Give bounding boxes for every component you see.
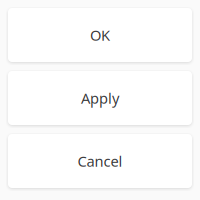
- staticText: Cancel: [77, 151, 122, 171]
- button[interactable]: Cancel: [8, 134, 192, 188]
- staticText: OK: [90, 25, 110, 45]
- button[interactable]: OK: [8, 8, 192, 62]
- staticText: Apply: [81, 88, 119, 108]
- button[interactable]: Apply: [8, 71, 192, 125]
